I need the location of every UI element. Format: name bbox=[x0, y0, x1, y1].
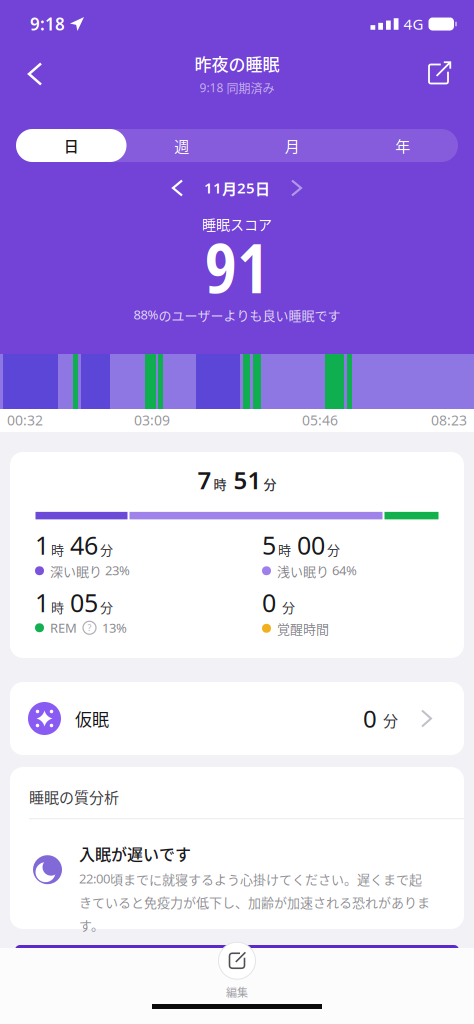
staticText: 時 bbox=[278, 540, 291, 559]
staticText: 編集 bbox=[226, 984, 248, 1000]
button[interactable]: 週 bbox=[126, 129, 237, 162]
staticText: 週 bbox=[174, 135, 189, 156]
button[interactable]: 仮眠 bbox=[10, 682, 464, 755]
staticText: 時 bbox=[213, 474, 226, 493]
staticText: REM bbox=[50, 619, 77, 636]
staticText: 88%のユーザーよりも良い睡眠です bbox=[133, 306, 340, 324]
button[interactable]: 編集 bbox=[218, 942, 255, 1000]
staticText: 00 bbox=[297, 528, 325, 562]
staticText: 仮眠 bbox=[75, 706, 109, 730]
staticText: 1 bbox=[35, 528, 49, 562]
staticText: 浅い眠り 64% bbox=[277, 562, 357, 580]
staticText: 7 bbox=[197, 464, 211, 496]
staticText: 22:00頃までに就寝するよう心掛けてください。遅くまで起きていると免疫力が低下… bbox=[79, 870, 430, 934]
button[interactable]: Back bbox=[0, 55, 41, 92]
staticText: 分 bbox=[263, 474, 276, 493]
staticText: 年 bbox=[395, 135, 410, 156]
staticText: 1 bbox=[35, 586, 49, 619]
staticText: 0 bbox=[363, 703, 377, 734]
staticText: 分 bbox=[282, 598, 295, 616]
staticText: 分 bbox=[100, 598, 113, 616]
staticText: 05:46 bbox=[302, 411, 338, 429]
staticText: 00:32 bbox=[7, 411, 43, 429]
staticText: 昨夜の睡眠 bbox=[194, 51, 279, 75]
staticText: ? bbox=[87, 622, 91, 634]
staticText: 51 bbox=[233, 464, 261, 496]
staticText: 0 bbox=[262, 586, 276, 619]
staticText: 睡眠の質分析 bbox=[29, 786, 119, 807]
staticText: 03:09 bbox=[134, 411, 170, 429]
staticText: 91 bbox=[205, 220, 269, 313]
staticText: 9:18 bbox=[30, 13, 65, 35]
staticText: 5 bbox=[262, 528, 276, 562]
staticText: 9:18 同期済み bbox=[199, 79, 274, 96]
staticText: 深い眠り 23% bbox=[50, 562, 130, 580]
staticText: 日 bbox=[64, 135, 79, 156]
staticText: 4G bbox=[403, 14, 423, 34]
staticText: 入眠が遅いです bbox=[79, 842, 191, 865]
button[interactable]: 年 bbox=[347, 129, 458, 162]
staticText: 月 bbox=[285, 135, 300, 156]
staticText: 分 bbox=[327, 540, 340, 559]
staticText: 覚醒時間 bbox=[277, 619, 329, 637]
button[interactable]: Previous day bbox=[165, 172, 190, 203]
staticText: 11月25日 bbox=[204, 177, 270, 199]
staticText: 05 bbox=[70, 586, 98, 619]
staticText: 分 bbox=[100, 540, 113, 559]
staticText: 46 bbox=[70, 528, 98, 562]
staticText: 時 bbox=[51, 598, 64, 616]
staticText: 睡眠スコア bbox=[202, 214, 272, 234]
button[interactable]: 月 bbox=[237, 129, 347, 162]
button[interactable]: 日 bbox=[16, 129, 126, 162]
staticText: 時 bbox=[51, 540, 64, 559]
button[interactable]: Next day bbox=[284, 172, 309, 203]
staticText: 13% bbox=[102, 619, 127, 636]
button[interactable]: Share bbox=[429, 56, 474, 91]
staticText: 08:23 bbox=[431, 411, 467, 429]
staticText: 分 bbox=[383, 709, 398, 731]
